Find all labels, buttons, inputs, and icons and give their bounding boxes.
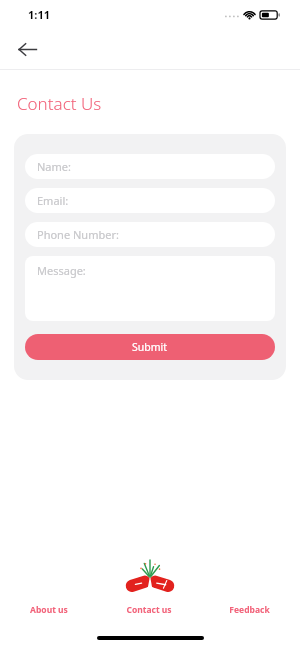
staticText: Email: [37, 193, 69, 208]
button[interactable]: Message: [25, 256, 275, 321]
button[interactable]: Name: [25, 154, 275, 179]
button[interactable]: About us [26, 601, 72, 619]
staticText: Submit [132, 340, 168, 354]
button[interactable]: Feedback [225, 601, 274, 619]
staticText: Message: [37, 263, 86, 278]
button[interactable]: Phone Number: [25, 222, 275, 247]
staticText: Name: [37, 159, 71, 174]
staticText: About us [30, 604, 68, 616]
staticText: Contact us [126, 604, 172, 616]
staticText: Contact Us [17, 92, 102, 115]
button[interactable]: Back [10, 32, 44, 66]
button[interactable]: Contact us [122, 601, 176, 619]
button[interactable]: Submit [25, 334, 275, 360]
staticText: 1:11 [28, 7, 50, 22]
staticText: Feedback [229, 604, 270, 616]
staticText: Phone Number: [37, 227, 119, 242]
other: Logo [122, 557, 178, 595]
button[interactable]: Email: [25, 188, 275, 213]
